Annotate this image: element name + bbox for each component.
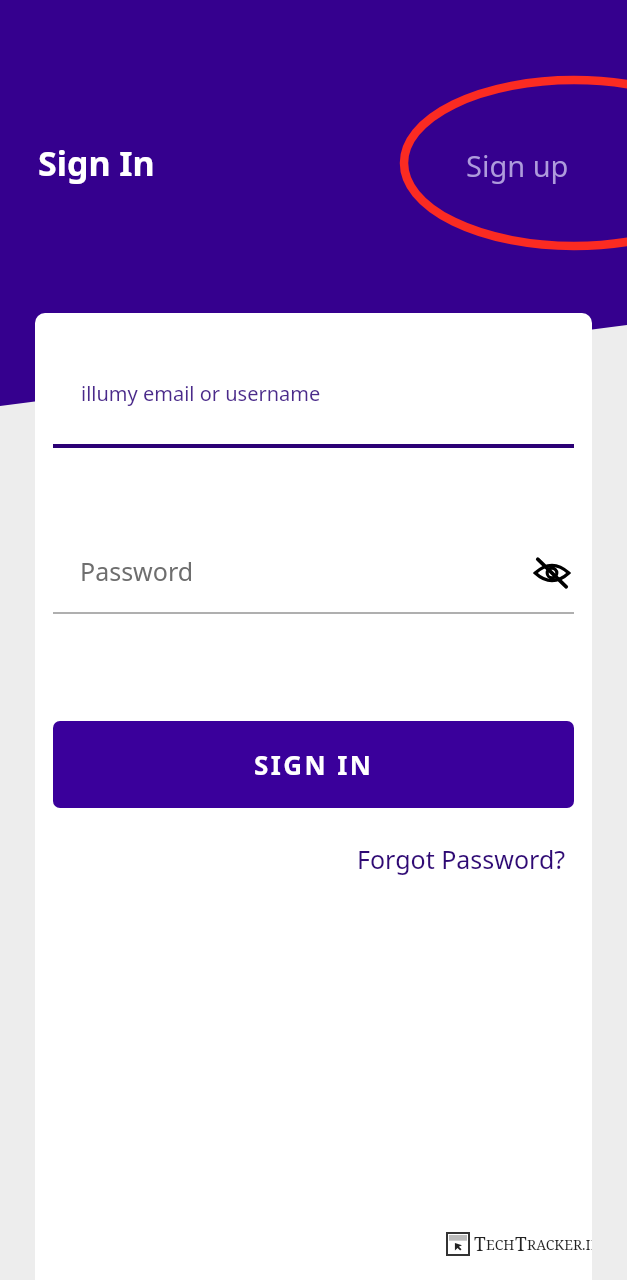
staticText: ECH xyxy=(486,1235,515,1254)
staticText: T xyxy=(474,1231,486,1257)
button[interactable]: Forgot Password? xyxy=(353,838,570,880)
staticText: illumy email or username xyxy=(81,380,321,407)
staticText: Sign In xyxy=(38,140,155,186)
staticText: RACKER.IN xyxy=(527,1235,592,1254)
button[interactable]: Show password xyxy=(528,549,576,597)
staticText: Password xyxy=(80,554,194,588)
staticText: T xyxy=(515,1231,527,1257)
button[interactable]: Password xyxy=(35,531,592,613)
button[interactable]: illumy email or username xyxy=(35,359,592,449)
staticText: Forgot Password? xyxy=(357,842,566,876)
button[interactable]: Sign In xyxy=(36,138,157,188)
staticText: SIGN IN xyxy=(254,747,374,782)
button[interactable]: Sign up xyxy=(462,142,573,189)
button[interactable]: SIGN IN xyxy=(53,721,574,808)
staticText: Sign up xyxy=(466,146,569,185)
